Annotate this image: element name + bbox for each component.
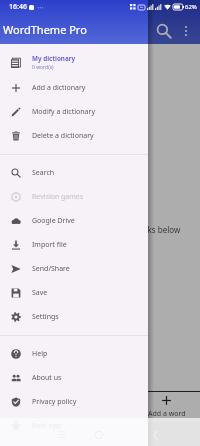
staticText: Rate app — [32, 421, 62, 431]
staticText: Delete a dictionary — [32, 131, 94, 141]
button[interactable]: Import words — [0, 391, 66, 422]
staticText: 62% — [185, 3, 197, 11]
staticText: Import file — [32, 240, 67, 250]
button[interactable]: About us — [0, 366, 148, 390]
button[interactable]: Send/Share — [0, 257, 148, 281]
staticText: 16:46 — [9, 2, 27, 12]
button[interactable]: Back — [152, 431, 160, 440]
staticText: My dictionary — [32, 54, 76, 63]
staticText: Add a word — [148, 409, 186, 419]
button[interactable]: Home — [94, 431, 104, 439]
staticText: Modify a dictionary — [32, 107, 95, 117]
staticText: Search — [32, 168, 55, 178]
button[interactable]: Privacy policy — [0, 390, 148, 414]
staticText: WordTheme Pro — [3, 22, 87, 37]
button[interactable]: Settings — [0, 305, 148, 329]
staticText: Settings — [32, 312, 59, 322]
button[interactable]: My dictionary — [0, 49, 148, 76]
staticText: 0 word(s) — [32, 64, 54, 71]
button[interactable]: Search — [156, 23, 172, 39]
button[interactable]: Delete a dictionary — [0, 124, 148, 148]
button[interactable]: Google Drive — [0, 209, 148, 233]
staticText: Add words using the tasks below — [57, 224, 181, 235]
staticText: Revision games — [32, 192, 84, 202]
button[interactable]: Add a dictionary — [0, 76, 148, 100]
button[interactable]: Recents — [58, 431, 66, 439]
button[interactable]: Help — [0, 342, 148, 366]
staticText: Privacy policy — [32, 397, 77, 407]
staticText: Google Drive — [32, 216, 75, 226]
button[interactable]: Revision games — [0, 185, 148, 209]
staticText: WordTheme Pro — [3, 22, 87, 37]
staticText: Add a dictionary — [32, 83, 86, 93]
button[interactable]: Add a word — [133, 391, 200, 422]
staticText: About us — [32, 373, 62, 383]
staticText: Help — [32, 349, 48, 359]
staticText: Save — [32, 288, 48, 298]
button[interactable]: Paste text — [66, 391, 133, 422]
button[interactable]: Search — [0, 161, 148, 185]
button[interactable]: Save — [0, 281, 148, 305]
staticText: Send/Share — [32, 264, 70, 274]
button[interactable]: More options — [178, 23, 194, 39]
button[interactable]: Modify a dictionary — [0, 100, 148, 124]
button[interactable]: Import file — [0, 233, 148, 257]
